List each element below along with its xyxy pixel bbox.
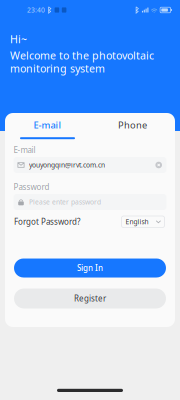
staticText: Phone — [118, 119, 147, 131]
button[interactable]: Register — [14, 288, 166, 308]
staticText: E-mail — [33, 119, 61, 131]
staticText: 23:40 — [27, 6, 45, 14]
staticText: E-mail — [13, 145, 35, 155]
staticText: English — [125, 217, 148, 226]
staticText: monitoring system — [10, 61, 105, 75]
staticText: Welcome to the photovoltaic — [10, 48, 154, 62]
button[interactable]: Phone — [90, 113, 175, 142]
button[interactable]: E-mail — [5, 113, 90, 142]
staticText: youyongqin@irvt.com.cn — [29, 161, 105, 169]
staticText: Hi~ — [10, 32, 27, 46]
staticText: Register — [74, 293, 106, 304]
button[interactable]: Sign In — [14, 258, 166, 277]
staticText: Sign In — [77, 263, 103, 273]
staticText: Please enter password — [29, 198, 101, 206]
staticText: Password — [13, 182, 49, 192]
staticText: Forgot Password? — [14, 216, 80, 227]
button[interactable]: English — [121, 216, 164, 227]
button[interactable]: Forgot Password? — [14, 216, 80, 227]
